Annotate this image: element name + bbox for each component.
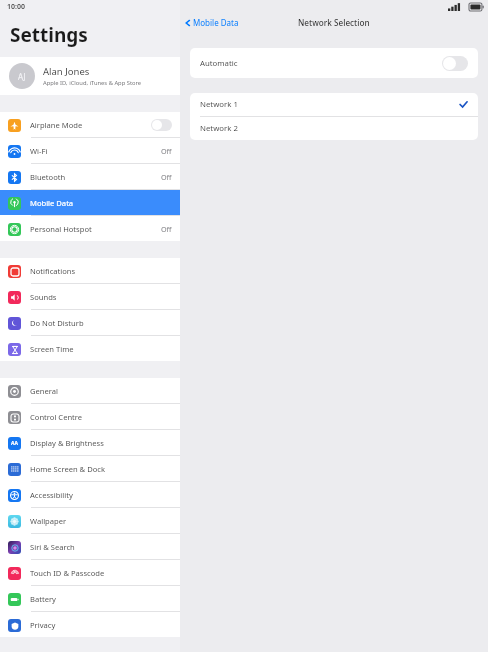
button[interactable]: Siri & Search bbox=[0, 534, 180, 559]
button[interactable]: Battery bbox=[0, 586, 180, 611]
button[interactable]: Touch ID & Passcode bbox=[0, 560, 180, 585]
staticText: Personal Hotspot bbox=[30, 224, 161, 234]
button[interactable]: Automatic bbox=[190, 48, 478, 78]
button[interactable]: Personal Hotspot bbox=[0, 216, 180, 241]
button[interactable]: Sounds bbox=[0, 284, 180, 309]
button[interactable]: Privacy bbox=[0, 612, 180, 637]
staticText: Notifications bbox=[30, 266, 172, 276]
staticText: Alan Jones bbox=[43, 65, 90, 78]
staticText: 10:00 bbox=[7, 2, 25, 12]
button[interactable]: General bbox=[0, 378, 180, 403]
button[interactable]: Mobile Data bbox=[0, 190, 180, 215]
staticText: Screen Time bbox=[30, 344, 172, 354]
staticText: Battery bbox=[30, 594, 172, 604]
staticText: Airplane Mode bbox=[30, 120, 151, 130]
button[interactable]: Control Centre bbox=[0, 404, 180, 429]
staticText: Mobile Data bbox=[30, 198, 172, 208]
button[interactable]: Mobile Data bbox=[184, 17, 239, 28]
staticText: Sounds bbox=[30, 292, 172, 302]
staticText: General bbox=[30, 386, 172, 396]
staticText: Mobile Data bbox=[193, 17, 239, 28]
staticText: Network 2 bbox=[200, 123, 238, 134]
staticText: Off bbox=[161, 146, 172, 156]
button[interactable]: Home Screen & Dock bbox=[0, 456, 180, 481]
staticText: Control Centre bbox=[30, 412, 172, 422]
button[interactable]: AJ bbox=[0, 57, 180, 95]
button[interactable]: Accessibility bbox=[0, 482, 180, 507]
button[interactable]: Do Not Disturb bbox=[0, 310, 180, 335]
staticText: AJ bbox=[18, 71, 26, 82]
staticText: Display & Brightness bbox=[30, 438, 172, 448]
staticText: Home Screen & Dock bbox=[30, 464, 172, 474]
button[interactable]: Airplane Mode toggle bbox=[151, 119, 172, 131]
staticText: Off bbox=[161, 172, 172, 182]
staticText: Siri & Search bbox=[30, 542, 172, 552]
staticText: Network Selection bbox=[298, 17, 370, 28]
button[interactable]: Wallpaper bbox=[0, 508, 180, 533]
staticText: Settings bbox=[10, 22, 88, 48]
staticText: Off bbox=[161, 224, 172, 234]
staticText: Privacy bbox=[30, 620, 172, 630]
staticText: AA bbox=[11, 440, 18, 447]
button[interactable]: Network 1 bbox=[190, 93, 478, 116]
button[interactable]: Notifications bbox=[0, 258, 180, 283]
button[interactable]: Bluetooth bbox=[0, 164, 180, 189]
staticText: Bluetooth bbox=[30, 172, 161, 182]
button[interactable]: Airplane Mode bbox=[0, 112, 180, 137]
staticText: Automatic bbox=[200, 58, 238, 69]
staticText: Touch ID & Passcode bbox=[30, 568, 172, 578]
button[interactable]: Screen Time bbox=[0, 336, 180, 361]
staticText: Accessibility bbox=[30, 490, 172, 500]
staticText: Do Not Disturb bbox=[30, 318, 172, 328]
button[interactable]: Wi-Fi bbox=[0, 138, 180, 163]
button[interactable]: AA bbox=[0, 430, 180, 455]
staticText: Wi-Fi bbox=[30, 146, 161, 156]
button[interactable]: Automatic toggle bbox=[442, 56, 468, 71]
button[interactable]: Network 2 bbox=[190, 117, 478, 140]
staticText: Wallpaper bbox=[30, 516, 172, 526]
staticText: Apple ID, iCloud, iTunes & App Store bbox=[43, 79, 142, 87]
staticText: Network 1 bbox=[200, 99, 238, 110]
